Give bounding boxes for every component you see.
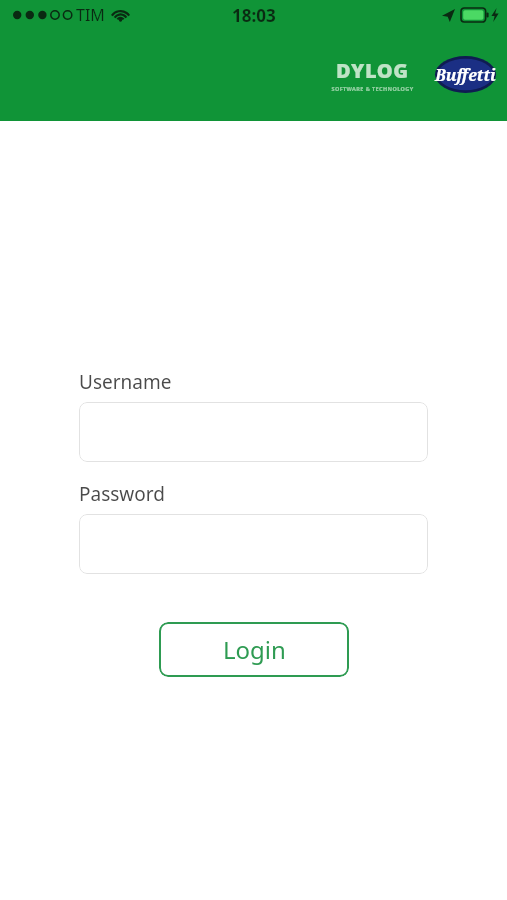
button[interactable]: [79, 402, 428, 462]
staticText: DYLOG: [336, 57, 409, 84]
staticText: Password: [79, 481, 165, 507]
button[interactable]: Login: [159, 622, 349, 677]
staticText: Buffetti: [435, 64, 496, 86]
staticText: Login: [223, 633, 286, 666]
staticText: Username: [79, 369, 172, 395]
staticText: SOFTWARE & TECHNOLOGY: [331, 85, 414, 92]
button[interactable]: [79, 514, 428, 574]
staticText: TIM: [76, 4, 105, 26]
staticText: 18:03: [232, 4, 276, 27]
